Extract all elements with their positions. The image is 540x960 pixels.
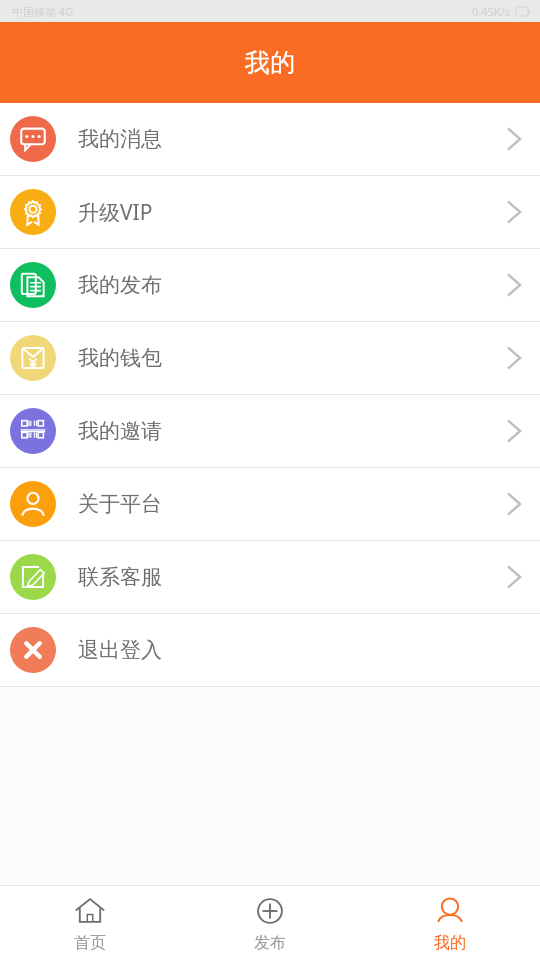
- staticText: 中国移动 4G: [12, 4, 74, 19]
- staticText: 退出登入: [78, 637, 162, 663]
- staticText: 我的: [245, 47, 295, 78]
- button[interactable]: 升级VIP: [0, 176, 540, 248]
- button[interactable]: 我的邀请: [0, 395, 540, 467]
- button[interactable]: 发布: [180, 886, 360, 960]
- button[interactable]: 联系客服: [0, 541, 540, 613]
- button[interactable]: 我的消息: [0, 103, 540, 175]
- button[interactable]: 我的钱包: [0, 322, 540, 394]
- staticText: 我的: [434, 933, 466, 953]
- button[interactable]: 退出登入: [0, 614, 540, 686]
- button[interactable]: 首页: [0, 886, 180, 960]
- staticText: 升级VIP: [78, 198, 153, 227]
- button[interactable]: 我的: [360, 886, 540, 960]
- staticText: 发布: [254, 933, 286, 953]
- button[interactable]: 我的发布: [0, 249, 540, 321]
- staticText: 0.45K/s: [472, 4, 510, 19]
- staticText: 我的钱包: [78, 345, 162, 371]
- button[interactable]: 关于平台: [0, 468, 540, 540]
- staticText: 首页: [74, 933, 106, 953]
- staticText: 我的邀请: [78, 418, 162, 444]
- staticText: 关于平台: [78, 491, 162, 517]
- staticText: 联系客服: [78, 564, 162, 590]
- staticText: 我的消息: [78, 126, 162, 152]
- staticText: 我的发布: [78, 272, 162, 298]
